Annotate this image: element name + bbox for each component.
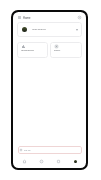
button[interactable]: Nidhi Sharma (17, 22, 82, 37)
button[interactable]: Home (16, 156, 33, 166)
staticText: Say hi! (24, 149, 31, 152)
staticText: Nidhi Sharma (32, 28, 46, 31)
button[interactable]: Points (50, 42, 82, 58)
button[interactable]: Leaderboard (17, 42, 48, 58)
button[interactable]: Say hi! (18, 146, 82, 154)
staticText: Leaderboard (21, 49, 34, 52)
button[interactable]: Menu (17, 15, 22, 20)
staticText: Points (54, 49, 61, 52)
button[interactable]: Explore (33, 156, 50, 166)
button[interactable]: Notifications (77, 15, 82, 20)
button[interactable]: Saved (50, 156, 67, 166)
staticText: Home (23, 16, 31, 20)
button[interactable]: Profile (67, 156, 84, 166)
